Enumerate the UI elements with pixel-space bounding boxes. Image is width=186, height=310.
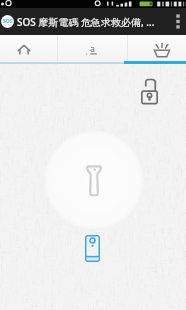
button[interactable]: Flashlight: [44, 130, 144, 230]
staticText: SOS: [3, 18, 13, 25]
button[interactable]: Home: [0, 35, 57, 61]
button[interactable]: Amazon: [58, 35, 127, 61]
button[interactable]: Unlock: [139, 78, 159, 104]
staticText: SOS 摩斯電碼 危急求救必備, ...: [17, 15, 172, 29]
button[interactable]: SOS: [0, 8, 186, 35]
staticText: a: [90, 42, 96, 54]
button[interactable]: More options: [172, 8, 184, 35]
button[interactable]: Device: [84, 234, 101, 263]
button[interactable]: Shopping cart: [128, 35, 186, 61]
